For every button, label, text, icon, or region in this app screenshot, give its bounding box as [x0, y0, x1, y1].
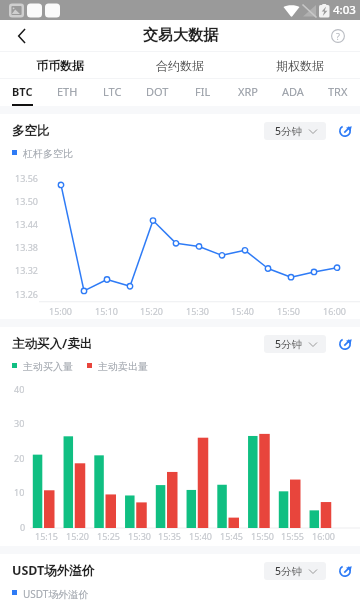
- staticText: 13.32: [15, 264, 39, 276]
- staticText: 15:30: [186, 305, 210, 317]
- staticText: TRX: [328, 84, 348, 99]
- button[interactable]: DOT: [135, 79, 180, 106]
- staticText: 5分钟: [275, 337, 303, 351]
- staticText: 合约数据: [156, 58, 204, 73]
- staticText: 15:45: [220, 530, 244, 542]
- staticText: 15:50: [277, 305, 301, 317]
- staticText: 15:40: [231, 305, 255, 317]
- staticText: 主动买入量: [23, 360, 73, 373]
- staticText: 15:30: [128, 530, 152, 542]
- staticText: ?: [336, 30, 340, 42]
- staticText: 4:03: [333, 2, 356, 18]
- staticText: 10: [14, 486, 25, 498]
- staticText: 币币数据: [36, 58, 84, 73]
- button[interactable]: Refresh: [336, 562, 354, 580]
- staticText: 15:10: [95, 305, 119, 317]
- staticText: 5分钟: [275, 564, 303, 578]
- button[interactable]: 币币数据: [0, 58, 120, 73]
- button[interactable]: LTC: [90, 79, 135, 106]
- button[interactable]: ETH: [45, 79, 90, 106]
- staticText: 15:55: [281, 530, 305, 542]
- staticText: DOT: [146, 84, 169, 99]
- staticText: 15:20: [140, 305, 164, 317]
- staticText: 主动买入/卖出: [12, 335, 93, 352]
- staticText: 15:15: [35, 530, 59, 542]
- button[interactable]: XRP: [225, 79, 270, 106]
- button[interactable]: Help: [316, 20, 360, 51]
- staticText: 交易大数据: [143, 26, 218, 45]
- staticText: ADA: [282, 84, 304, 99]
- staticText: 15:35: [158, 530, 182, 542]
- staticText: 15:50: [251, 530, 275, 542]
- staticText: 多空比: [12, 123, 50, 139]
- staticText: 40: [14, 383, 25, 395]
- staticText: ETH: [57, 84, 78, 99]
- staticText: 期权数据: [276, 58, 324, 73]
- button[interactable]: TRX: [315, 79, 360, 106]
- staticText: 5分钟: [275, 124, 303, 138]
- staticText: 20: [14, 452, 25, 464]
- staticText: LTC: [103, 84, 122, 99]
- staticText: 15:40: [189, 530, 213, 542]
- button[interactable]: 5分钟: [264, 335, 326, 353]
- staticText: 主动卖出量: [98, 360, 148, 373]
- staticText: USDT场外溢价: [23, 587, 89, 600]
- staticText: 13.56: [15, 172, 39, 184]
- staticText: 15:25: [97, 530, 121, 542]
- staticText: 30: [14, 417, 25, 429]
- button[interactable]: Refresh: [336, 335, 354, 353]
- staticText: 13.44: [15, 218, 39, 230]
- staticText: XRP: [238, 84, 258, 99]
- button[interactable]: 5分钟: [264, 122, 326, 140]
- staticText: 15:20: [66, 530, 90, 542]
- staticText: 0: [20, 521, 26, 533]
- staticText: 16:00: [323, 305, 347, 317]
- button[interactable]: FIL: [180, 79, 225, 106]
- staticText: 13.38: [15, 241, 39, 253]
- button[interactable]: 合约数据: [120, 58, 240, 73]
- button[interactable]: BTC: [0, 79, 45, 106]
- button[interactable]: Back: [0, 20, 44, 51]
- button[interactable]: Refresh: [336, 122, 354, 140]
- staticText: 13.50: [15, 195, 39, 207]
- button[interactable]: 期权数据: [240, 58, 360, 73]
- button[interactable]: ADA: [270, 79, 315, 106]
- staticText: 13.26: [15, 288, 39, 300]
- staticText: 15:00: [49, 305, 73, 317]
- button[interactable]: 5分钟: [264, 562, 326, 580]
- staticText: 16:00: [312, 530, 336, 542]
- staticText: BTC: [12, 84, 33, 99]
- staticText: FIL: [195, 84, 211, 99]
- staticText: 杠杆多空比: [23, 147, 73, 160]
- staticText: USDT场外溢价: [12, 562, 95, 579]
